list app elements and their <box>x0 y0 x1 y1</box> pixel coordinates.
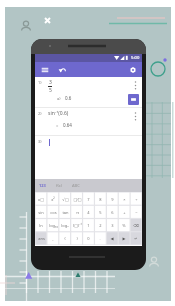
button[interactable]: Menu <box>39 64 51 76</box>
button[interactable]: π <box>71 206 83 219</box>
staticText: 1) <box>38 80 42 85</box>
button[interactable]: √□ <box>59 192 71 206</box>
staticText: 8 <box>99 197 102 202</box>
button[interactable]: ln <box>35 219 47 232</box>
button[interactable]: 3 <box>106 219 118 232</box>
staticText: log₁₀ <box>49 223 58 228</box>
staticText: f(x) <box>56 183 62 188</box>
staticText: ABC <box>72 183 80 188</box>
staticText: √□ <box>62 197 69 202</box>
button[interactable]: 1 <box>83 219 94 232</box>
staticText: a) <box>57 96 61 101</box>
button[interactable]: × <box>118 192 130 206</box>
staticText: 0.6 <box>65 95 72 101</box>
staticText: logₙ <box>61 223 69 228</box>
button[interactable]: Close <box>41 14 54 27</box>
staticText: = <box>56 123 59 128</box>
button[interactable]: 9 <box>106 192 118 206</box>
staticText: x□ <box>38 197 44 202</box>
button[interactable]: 5 <box>94 206 106 219</box>
button[interactable]: Undo <box>56 64 68 76</box>
button[interactable]: ◀ <box>106 232 118 245</box>
button[interactable]: 7 <box>83 192 94 206</box>
staticText: 5:00 <box>131 55 140 61</box>
staticText: π <box>76 210 79 215</box>
staticText: sin <box>38 210 44 215</box>
staticText: 4 <box>87 210 90 215</box>
button[interactable]: + <box>118 206 130 219</box>
staticText: 5 <box>49 87 52 94</box>
staticText: ( <box>64 236 66 241</box>
button[interactable]: x² <box>47 192 59 206</box>
staticText: 5 <box>99 210 102 215</box>
button[interactable]: ↵ <box>130 232 142 245</box>
button[interactable]: Show keyboard <box>128 94 139 105</box>
button[interactable]: 0 <box>83 232 94 245</box>
button[interactable]: ÷ <box>130 192 142 206</box>
staticText: sin⁻¹(0.6) <box>48 110 69 117</box>
button[interactable]: % <box>118 219 130 232</box>
button[interactable]: 1) <box>35 77 142 107</box>
staticText: 1 <box>87 223 90 228</box>
staticText: 3) <box>38 139 42 144</box>
button[interactable]: f(x) <box>55 183 63 188</box>
button[interactable]: cos <box>47 206 59 219</box>
button[interactable]: . <box>94 232 106 245</box>
button[interactable]: tan <box>59 206 71 219</box>
button[interactable]: sin <box>35 206 47 219</box>
button[interactable]: logₙ <box>59 219 71 232</box>
staticText: ) <box>76 236 78 241</box>
staticText: □⁄□ <box>73 197 82 202</box>
button[interactable]: (□)⁻¹ <box>71 219 83 232</box>
button[interactable]: ABC <box>71 183 81 188</box>
button[interactable]: ( <box>59 232 71 245</box>
staticText: + <box>123 210 126 215</box>
staticText: ▶ <box>122 236 126 241</box>
button[interactable]: ans <box>35 232 47 245</box>
button[interactable]: log₁₀ <box>47 219 59 232</box>
staticText: × <box>123 197 126 202</box>
staticText: 0 <box>87 236 90 241</box>
staticText: % <box>122 223 126 228</box>
staticText: tan <box>62 210 69 215</box>
button[interactable]: x□ <box>35 192 47 206</box>
button[interactable]: , <box>47 232 59 245</box>
staticText: 0.64 <box>63 122 72 128</box>
button[interactable]: □⁄□ <box>71 192 83 206</box>
staticText: . <box>99 236 101 241</box>
button[interactable]: Account <box>17 17 35 35</box>
staticText: (□)⁻¹ <box>73 223 82 228</box>
button[interactable]: 8 <box>94 192 106 206</box>
button[interactable]: Profile <box>145 253 163 271</box>
button[interactable]: Settings <box>127 64 139 76</box>
staticText: x² <box>51 197 55 202</box>
button[interactable]: 2) <box>35 108 142 135</box>
button[interactable]: ⌫ <box>130 219 142 232</box>
button[interactable]: 6 <box>106 206 118 219</box>
staticText: 2) <box>38 111 42 116</box>
staticText: − <box>135 210 138 215</box>
button[interactable]: 3) <box>35 136 142 156</box>
button[interactable]: ▶ <box>118 232 130 245</box>
button[interactable]: ) <box>71 232 83 245</box>
button[interactable]: − <box>130 206 142 219</box>
staticText: 9 <box>111 197 114 202</box>
button[interactable]: 123 <box>38 183 47 188</box>
button[interactable]: More options <box>132 79 139 88</box>
button[interactable]: More options <box>132 110 139 119</box>
button[interactable]: 4 <box>83 206 94 219</box>
staticText: ⌫ <box>133 223 139 228</box>
staticText: 3 <box>49 79 52 86</box>
staticText: ÷ <box>135 197 138 202</box>
staticText: 3 <box>111 223 114 228</box>
staticText: 7 <box>87 197 90 202</box>
staticText: ln <box>39 223 43 228</box>
staticText: ◀ <box>110 236 114 241</box>
button[interactable]: 2 <box>94 219 106 232</box>
staticText: ans <box>38 236 45 241</box>
staticText: 6 <box>111 210 114 215</box>
staticText: ↵ <box>134 236 138 241</box>
staticText: , <box>52 236 54 241</box>
staticText: 123 <box>39 183 46 188</box>
staticText: 2 <box>99 223 102 228</box>
